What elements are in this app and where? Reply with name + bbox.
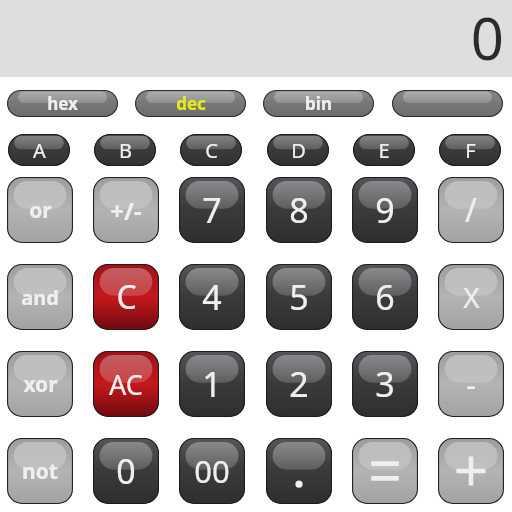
button[interactable]: decimal point	[266, 438, 332, 504]
button[interactable]: 00	[179, 438, 245, 504]
staticText: 1	[202, 361, 222, 407]
button[interactable]: 5	[266, 264, 332, 330]
staticText: F	[465, 137, 476, 164]
button[interactable]: not	[7, 438, 73, 504]
button[interactable]: C	[93, 264, 159, 330]
button[interactable]: 6	[352, 264, 418, 330]
staticText: and	[21, 284, 59, 311]
button[interactable]: 8	[266, 177, 332, 243]
staticText: 9	[375, 187, 395, 233]
button[interactable]: X	[438, 264, 504, 330]
staticText: 7	[202, 187, 222, 233]
staticText: bin	[305, 92, 332, 115]
button[interactable]: xor	[7, 351, 73, 417]
staticText: AC	[109, 366, 143, 403]
staticText: not	[22, 457, 58, 486]
button[interactable]: E	[353, 134, 415, 166]
button[interactable]: 4	[179, 264, 245, 330]
button[interactable]: 1	[179, 351, 245, 417]
button[interactable]: -	[438, 351, 504, 417]
staticText: 4	[202, 274, 222, 320]
staticText: 00	[194, 450, 230, 492]
button[interactable]: hex	[7, 90, 118, 117]
staticText: +/-	[110, 194, 142, 227]
button[interactable]: or	[7, 177, 73, 243]
button[interactable]: B	[94, 134, 156, 166]
button[interactable]: A	[8, 134, 70, 166]
staticText: C	[205, 137, 218, 164]
button[interactable]: AC	[93, 351, 159, 417]
button[interactable]: 7	[179, 177, 245, 243]
button[interactable]: 2	[266, 351, 332, 417]
button[interactable]: 0	[93, 438, 159, 504]
staticText: X	[463, 278, 480, 316]
staticText: 0	[470, 0, 504, 75]
staticText: E	[378, 137, 390, 164]
button[interactable]: F	[439, 134, 501, 166]
staticText: B	[119, 137, 132, 164]
staticText: -	[466, 364, 476, 405]
staticText: hex	[47, 92, 78, 115]
staticText: C	[116, 275, 137, 319]
staticText: /	[465, 188, 477, 232]
button[interactable]: plus	[438, 438, 504, 504]
staticText: 6	[375, 274, 395, 320]
staticText: 2	[289, 361, 309, 407]
staticText: xor	[23, 370, 58, 399]
button[interactable]: +/-	[93, 177, 159, 243]
staticText: dec	[176, 92, 206, 115]
button[interactable]: dec	[135, 90, 246, 117]
button[interactable]: mode	[392, 90, 503, 117]
staticText: 0	[116, 448, 136, 494]
staticText: 8	[289, 187, 309, 233]
staticText: or	[29, 196, 52, 225]
button[interactable]: bin	[263, 90, 374, 117]
button[interactable]: D	[267, 134, 329, 166]
button[interactable]: and	[7, 264, 73, 330]
staticText: D	[291, 137, 306, 164]
staticText: 3	[375, 361, 395, 407]
button[interactable]: /	[438, 177, 504, 243]
button[interactable]: C	[180, 134, 242, 166]
button[interactable]: 9	[352, 177, 418, 243]
staticText: 5	[289, 274, 309, 320]
button[interactable]: 3	[352, 351, 418, 417]
staticText: A	[33, 137, 46, 164]
button[interactable]: equals	[352, 438, 418, 504]
